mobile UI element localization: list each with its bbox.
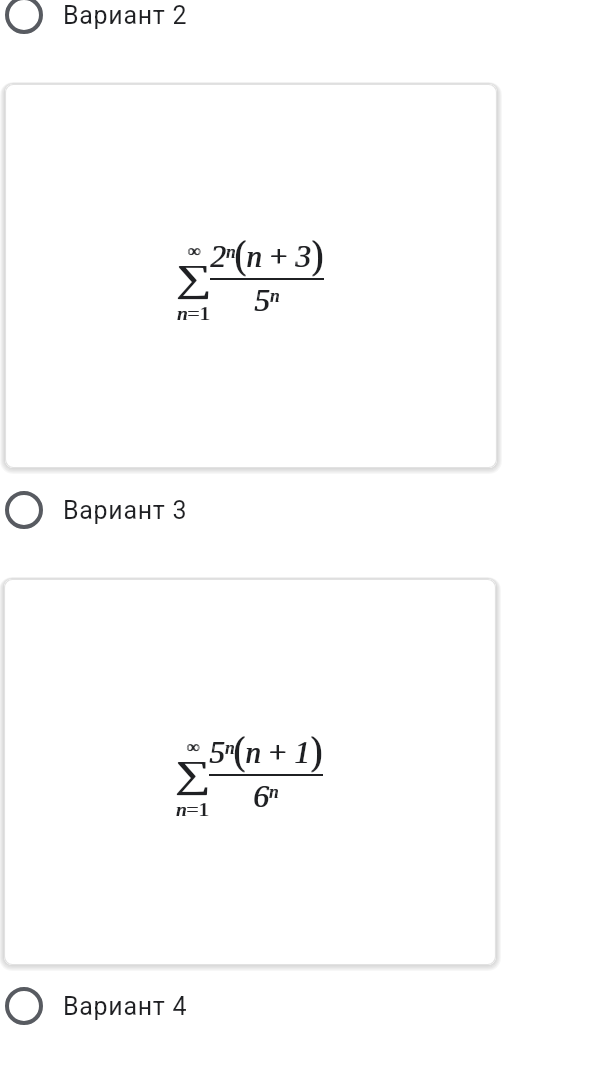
button[interactable]: Сумма ряда 5^n(n+1)/6^n bbox=[4, 579, 496, 965]
staticText: ( bbox=[233, 729, 246, 771]
staticText: 6n bbox=[254, 779, 279, 813]
staticText: n + 3 bbox=[246, 239, 312, 273]
staticText: ∞ bbox=[186, 737, 199, 757]
staticText: 5n bbox=[254, 283, 279, 317]
staticText: 5n bbox=[255, 283, 280, 317]
staticText: ) bbox=[312, 233, 325, 275]
staticText: n=1 bbox=[176, 304, 211, 324]
staticText: 5n bbox=[209, 735, 234, 769]
staticText: n=1 bbox=[176, 800, 211, 820]
staticText: ∞ bbox=[188, 241, 201, 261]
button[interactable]: Вариант 3 bbox=[0, 486, 600, 534]
staticText: ∑ bbox=[175, 753, 211, 795]
staticText: ) bbox=[310, 729, 323, 771]
staticText: n + 1 bbox=[246, 735, 312, 769]
staticText: 2n bbox=[211, 239, 236, 273]
staticText: ∑ bbox=[176, 753, 212, 795]
staticText: ( bbox=[234, 233, 247, 275]
staticText: 2n bbox=[210, 239, 235, 273]
staticText: Вариант 3 bbox=[63, 496, 188, 525]
staticText: ∑ bbox=[177, 257, 213, 299]
staticText: ( bbox=[235, 233, 248, 275]
button[interactable]: Вариант 4 bbox=[0, 982, 600, 1030]
staticText: ) bbox=[311, 729, 324, 771]
staticText: n + 3 bbox=[247, 239, 313, 273]
staticText: ∞ bbox=[187, 241, 200, 261]
staticText: ∑ bbox=[176, 257, 212, 299]
button[interactable]: Вариант 2 bbox=[0, 0, 600, 39]
staticText: Вариант 4 bbox=[63, 992, 188, 1021]
staticText: ∞ bbox=[187, 737, 200, 757]
staticText: n=1 bbox=[177, 304, 212, 324]
staticText: ) bbox=[311, 233, 324, 275]
staticText: ( bbox=[234, 729, 247, 771]
staticText: n + 1 bbox=[245, 735, 311, 769]
staticText: n=1 bbox=[175, 800, 210, 820]
staticText: Вариант 2 bbox=[63, 1, 188, 30]
staticText: 5n bbox=[210, 735, 235, 769]
staticText: 6n bbox=[253, 779, 278, 813]
button[interactable]: Сумма ряда 2^n(n+3)/5^n bbox=[5, 84, 497, 468]
